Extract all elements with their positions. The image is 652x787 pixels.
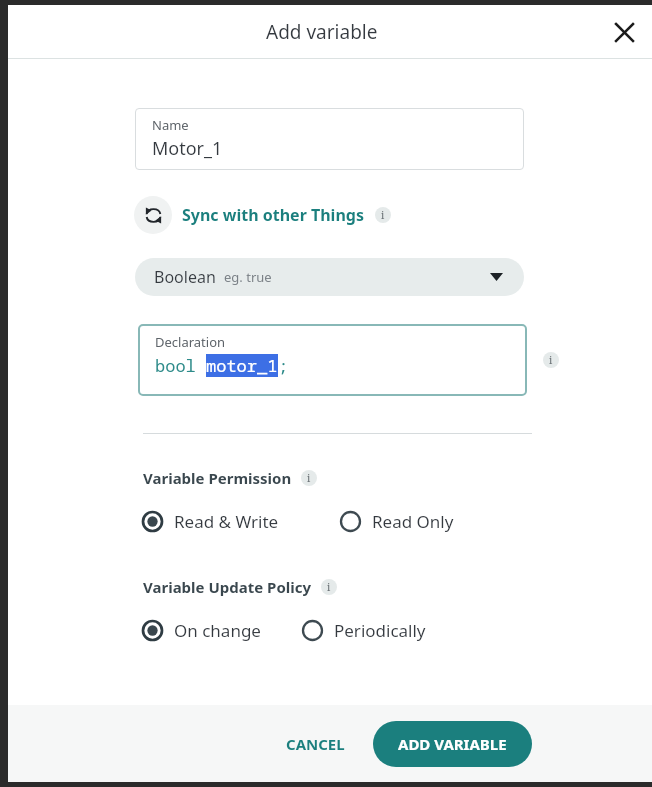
staticText: Periodically [334, 619, 426, 642]
button[interactable]: Boolean [135, 258, 524, 296]
staticText: i [327, 580, 331, 594]
button[interactable]: On change [141, 617, 261, 644]
staticText: i [307, 471, 311, 485]
staticText: Read Only [372, 510, 454, 533]
staticText: eg. true [224, 268, 272, 286]
staticText: Add variable [266, 19, 378, 45]
staticText: Name [152, 116, 189, 134]
staticText: Variable Update Policy [143, 577, 312, 597]
staticText: Declaration [155, 333, 226, 351]
staticText: ; [278, 354, 289, 377]
button[interactable]: Close [606, 14, 642, 50]
button[interactable]: Declaration [138, 324, 527, 396]
button[interactable]: Sync with other Things [134, 196, 391, 234]
button[interactable]: Read & Write [141, 508, 279, 535]
staticText: Variable Permission [143, 468, 292, 488]
staticText: ADD VARIABLE [398, 734, 507, 754]
staticText: On change [174, 619, 261, 642]
button[interactable]: Periodically [301, 617, 426, 644]
staticText: CANCEL [286, 734, 345, 754]
staticText: motor_1 [206, 354, 278, 377]
button[interactable]: Name [135, 108, 524, 170]
staticText: Sync with other Things [182, 204, 364, 226]
staticText: Motor_1 [152, 136, 223, 161]
staticText: bool [155, 354, 206, 377]
staticText: i [381, 208, 385, 222]
staticText: Boolean [154, 266, 216, 288]
staticText: Read & Write [174, 510, 279, 533]
button[interactable]: ADD VARIABLE [373, 721, 532, 767]
button[interactable]: Read Only [339, 508, 454, 535]
staticText: i [549, 353, 553, 367]
button[interactable]: CANCEL [274, 724, 357, 764]
